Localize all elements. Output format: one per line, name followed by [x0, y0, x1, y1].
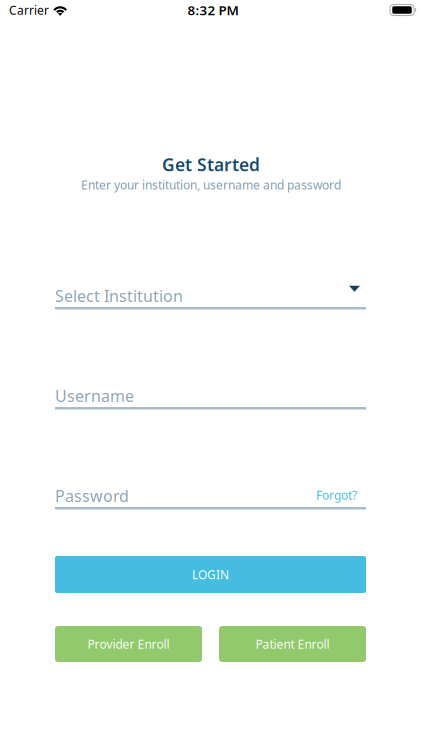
button[interactable]: Select Institution: [55, 287, 366, 309]
staticText: LOGIN: [192, 566, 229, 582]
button[interactable]: Provider Enroll: [55, 626, 202, 662]
staticText: Username: [55, 385, 134, 406]
staticText: Patient Enroll: [255, 636, 329, 652]
button[interactable]: Password: [55, 487, 366, 509]
staticText: Enter your institution, username and pas…: [81, 177, 341, 193]
button[interactable]: Username: [55, 387, 366, 409]
staticText: Get Started: [162, 153, 260, 176]
staticText: Carrier: [9, 2, 49, 18]
staticText: Forgot?: [316, 487, 357, 503]
staticText: 8:32 PM: [187, 1, 238, 19]
button[interactable]: Patient Enroll: [219, 626, 366, 662]
staticText: Select Institution: [55, 285, 183, 306]
button[interactable]: Forgot?: [305, 486, 357, 504]
staticText: Password: [55, 485, 129, 506]
button[interactable]: LOGIN: [55, 556, 366, 593]
staticText: Provider Enroll: [87, 636, 169, 652]
